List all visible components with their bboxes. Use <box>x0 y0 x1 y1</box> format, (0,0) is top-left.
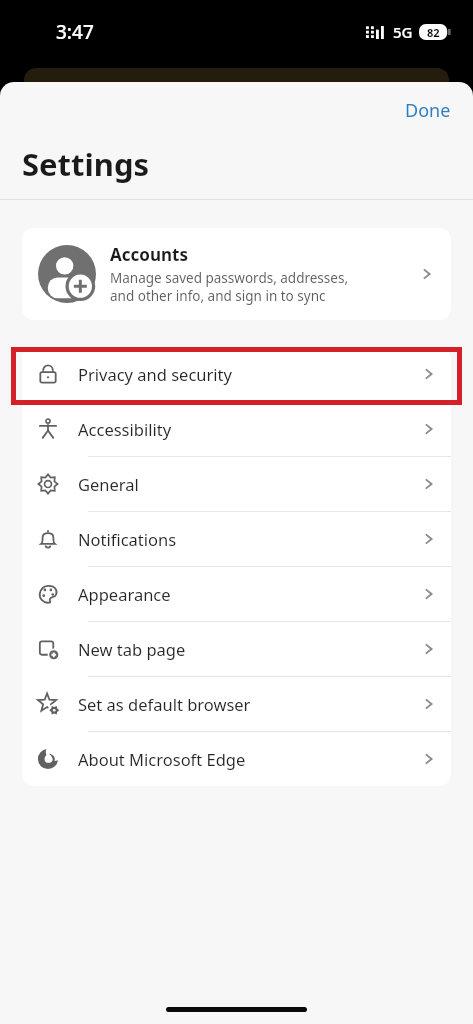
staticText: 3:47 <box>56 19 94 45</box>
staticText: Accounts <box>110 243 188 266</box>
staticText: 82 <box>427 25 440 40</box>
button[interactable]: Appearance <box>22 567 451 621</box>
staticText: General <box>78 473 421 495</box>
button[interactable]: Privacy and security <box>22 347 451 401</box>
button[interactable]: Notifications <box>22 512 451 566</box>
staticText: Manage saved passwords, addresses, and o… <box>110 269 349 305</box>
button[interactable]: Accounts <box>22 228 451 320</box>
staticText: Appearance <box>78 583 421 605</box>
button[interactable]: New tab page <box>22 622 451 676</box>
button[interactable]: Accessibility <box>22 402 451 456</box>
staticText: Privacy and security <box>78 363 421 385</box>
button[interactable]: General <box>22 457 451 511</box>
staticText: Accessibility <box>78 418 421 440</box>
staticText: Done <box>405 98 451 123</box>
button[interactable]: Set as default browser <box>22 677 451 731</box>
button[interactable]: Done <box>383 92 473 129</box>
button[interactable]: About Microsoft Edge <box>22 732 451 786</box>
staticText: 5G <box>393 22 413 42</box>
staticText: Settings <box>22 143 150 185</box>
staticText: Set as default browser <box>78 693 421 715</box>
staticText: New tab page <box>78 638 421 660</box>
staticText: About Microsoft Edge <box>78 748 421 770</box>
staticText: Notifications <box>78 528 421 550</box>
